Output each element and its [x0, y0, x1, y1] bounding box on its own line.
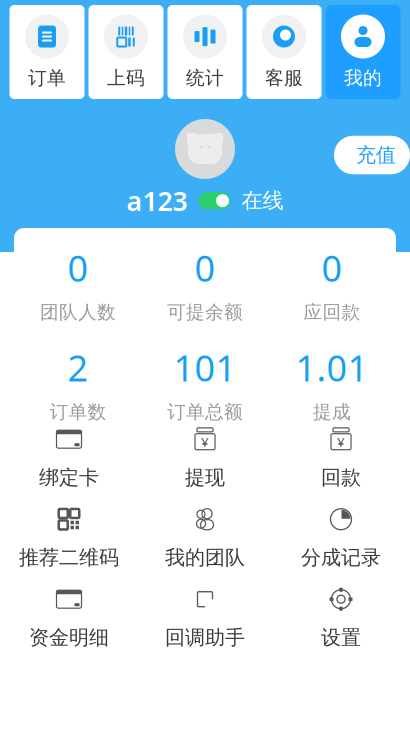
staticText: 我的团队 — [165, 545, 245, 570]
button[interactable]: 充值 — [334, 136, 410, 174]
staticText: 0 — [67, 244, 88, 292]
button[interactable]: 我的团队 — [137, 498, 273, 578]
button[interactable]: 上码 — [88, 5, 163, 99]
staticText: 提成 — [313, 400, 351, 423]
button[interactable]: 客服 — [246, 5, 321, 99]
staticText: 订单 — [28, 66, 66, 89]
staticText: 2 — [67, 344, 88, 391]
staticText: 订单总额 — [167, 400, 243, 423]
button[interactable]: 资金明细 — [1, 578, 137, 658]
button[interactable]: 推荐二维码 — [1, 498, 137, 578]
button[interactable]: 回调助手 — [137, 578, 273, 658]
staticText: a123 — [126, 183, 187, 218]
staticText: 分成记录 — [301, 545, 381, 570]
button[interactable]: 我的 — [325, 5, 400, 99]
staticText: 订单数 — [49, 400, 106, 423]
button[interactable]: 分成记录 — [273, 498, 409, 578]
staticText: 应回款 — [303, 301, 360, 324]
staticText: 101 — [173, 344, 236, 391]
button[interactable]: 统计 — [167, 5, 242, 99]
button[interactable]: 订单 — [9, 5, 84, 99]
staticText: 提现 — [185, 465, 225, 490]
staticText: 0 — [194, 244, 215, 292]
staticText: 可提余额 — [167, 301, 243, 324]
staticText: 设置 — [321, 625, 361, 650]
staticText: ¥ — [201, 433, 209, 451]
staticText: 在线 — [241, 188, 283, 214]
button[interactable]: 绑定卡 — [1, 418, 137, 498]
staticText: 绑定卡 — [39, 465, 99, 490]
staticText: 客服 — [265, 66, 303, 89]
staticText: 回款 — [321, 465, 361, 490]
staticText: ¥ — [337, 433, 345, 451]
staticText: 团队人数 — [40, 301, 116, 324]
staticText: 统计 — [186, 66, 224, 89]
staticText: 回调助手 — [165, 625, 245, 650]
staticText: 推荐二维码 — [19, 545, 119, 570]
staticText: 我的 — [344, 66, 382, 89]
staticText: 上码 — [107, 66, 145, 89]
staticText: 0 — [321, 244, 342, 292]
staticText: 充值 — [356, 143, 396, 167]
staticText: 1.01 — [295, 344, 368, 391]
button[interactable]: ¥ — [137, 418, 273, 498]
button[interactable]: ¥ — [273, 418, 409, 498]
button[interactable]: 设置 — [273, 578, 409, 658]
staticText: 资金明细 — [29, 625, 109, 650]
